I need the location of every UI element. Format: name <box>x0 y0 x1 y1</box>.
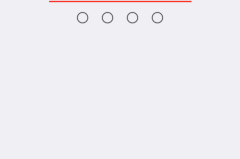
button[interactable]: Progress bar <box>49 0 192 4</box>
button[interactable]: Page 2 <box>95 7 120 28</box>
button[interactable]: Page 1 <box>70 7 95 28</box>
button[interactable]: Page 3 <box>120 7 145 28</box>
button[interactable]: Page 4 <box>145 7 170 28</box>
